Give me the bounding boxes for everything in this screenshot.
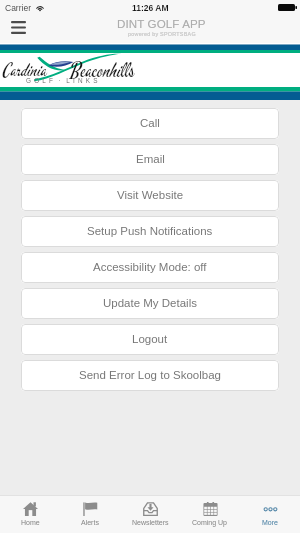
staticText: 11:26 AM — [132, 3, 169, 12]
staticText: Accessibility Mode: off — [93, 261, 207, 274]
button[interactable]: Home — [0, 496, 60, 533]
staticText: Coming Up — [192, 519, 228, 527]
staticText: Setup Push Notifications — [87, 225, 213, 238]
button[interactable]: More — [240, 496, 300, 533]
button[interactable]: Email — [21, 144, 279, 175]
staticText: Alerts — [81, 519, 99, 527]
button[interactable]: Alerts — [60, 496, 120, 533]
button[interactable]: Update My Details — [21, 288, 279, 319]
staticText: Visit Website — [117, 189, 184, 202]
button[interactable]: Send Error Log to Skoolbag — [21, 360, 279, 391]
staticText: More — [262, 519, 278, 527]
button[interactable]: Visit Website — [21, 180, 279, 211]
button[interactable]: Setup Push Notifications — [21, 216, 279, 247]
staticText: Beaconhills — [70, 58, 135, 84]
staticText: Newsletters — [132, 519, 169, 527]
button[interactable]: Newsletters — [120, 496, 180, 533]
button[interactable]: Call — [21, 108, 279, 139]
button[interactable]: Accessibility Mode: off — [21, 252, 279, 283]
button[interactable]: Menu — [2, 14, 34, 40]
staticText: Update My Details — [103, 297, 197, 310]
staticText: Email — [136, 153, 165, 166]
staticText: Call — [140, 117, 160, 130]
staticText: Carrier — [5, 3, 31, 12]
staticText: Home — [21, 519, 40, 527]
staticText: Cardinia — [3, 58, 48, 82]
staticText: powered by SPORTSBAG — [128, 31, 196, 37]
staticText: G O L F · L I N K S — [26, 77, 99, 84]
staticText: Send Error Log to Skoolbag — [79, 369, 221, 382]
staticText: Logout — [132, 333, 168, 346]
button[interactable]: Logout — [21, 324, 279, 355]
button[interactable]: Coming Up — [180, 496, 240, 533]
staticText: DINT GOLF APP — [117, 17, 206, 30]
